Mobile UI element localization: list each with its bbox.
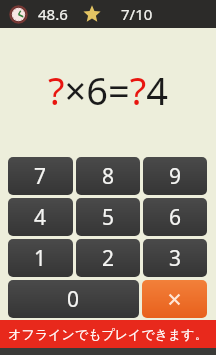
- staticText: 1: [34, 244, 47, 273]
- staticText: 0: [67, 285, 80, 314]
- button[interactable]: 4: [8, 198, 73, 236]
- other: Score star: [83, 5, 101, 23]
- button[interactable]: 0: [8, 280, 139, 318]
- button[interactable]: 9: [143, 157, 207, 195]
- button[interactable]: 5: [76, 198, 140, 236]
- button[interactable]: 1: [8, 239, 73, 277]
- staticText: 48.6: [38, 4, 68, 24]
- button[interactable]: 7: [8, 157, 73, 195]
- button[interactable]: 8: [76, 157, 140, 195]
- staticText: ?×6=?4: [48, 64, 168, 116]
- button[interactable]: 2: [76, 239, 140, 277]
- staticText: 4: [34, 203, 47, 232]
- staticText: 9: [169, 162, 182, 191]
- staticText: 2: [102, 244, 115, 273]
- staticText: 7/10: [121, 4, 153, 24]
- other: Timer: [9, 5, 28, 24]
- staticText: 7: [34, 162, 47, 191]
- button[interactable]: 6: [143, 198, 207, 236]
- staticText: 6: [169, 203, 182, 232]
- button[interactable]: オフラインでもプレイできます。: [0, 320, 216, 348]
- staticText: 8: [102, 162, 115, 191]
- staticText: 5: [102, 203, 115, 232]
- staticText: オフラインでもプレイできます。: [8, 326, 208, 342]
- staticText: 3: [169, 244, 182, 273]
- button[interactable]: 3: [143, 239, 207, 277]
- button[interactable]: Clear: [142, 280, 207, 318]
